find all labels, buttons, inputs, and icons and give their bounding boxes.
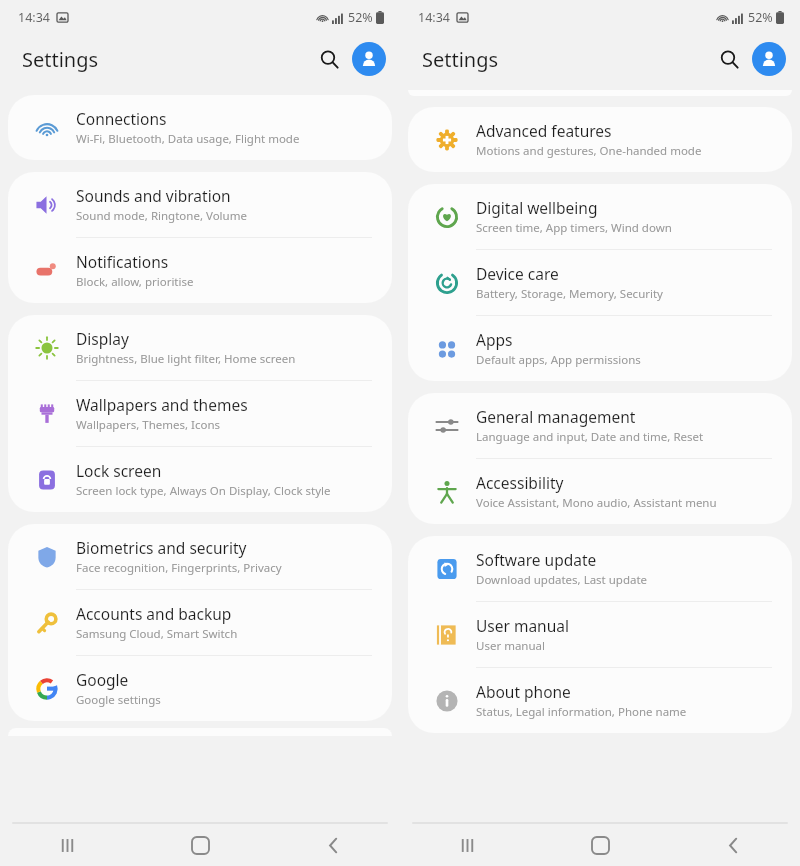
staticText: Samsung Cloud, Smart Switch [76,626,238,642]
button[interactable]: Wallpapers and themes [8,381,392,446]
staticText: Software update [476,549,597,570]
button[interactable]: Back [667,824,800,866]
staticText: Language and input, Date and time, Reset [476,429,704,445]
staticText: Sounds and vibration [76,185,231,206]
staticText: Default apps, App permissions [476,352,641,368]
staticText: Battery, Storage, Memory, Security [476,286,663,302]
staticText: General management [476,406,636,427]
staticText: Connections [76,108,167,129]
button[interactable]: Accessibility [408,459,792,524]
staticText: Advanced features [476,120,612,141]
button[interactable]: Display [8,315,392,380]
staticText: Wallpapers, Themes, Icons [76,417,221,433]
staticText: 14:34 [418,9,450,26]
button[interactable]: Lock screen [8,447,392,512]
staticText: Settings [422,46,499,73]
button[interactable]: About phone [408,668,792,733]
button[interactable]: Connections [8,95,392,160]
button[interactable]: Recents [0,824,134,866]
button[interactable]: Software update [408,536,792,601]
staticText: User manual [476,638,545,654]
staticText: Voice Assistant, Mono audio, Assistant m… [476,495,717,511]
button[interactable]: Home [134,824,267,866]
button[interactable]: Search [312,42,346,76]
button[interactable]: Back [267,824,400,866]
staticText: Block, allow, prioritise [76,274,194,290]
button[interactable]: Apps [408,316,792,381]
staticText: Screen time, App timers, Wind down [476,220,672,236]
button[interactable]: Digital wellbeing [408,184,792,249]
button[interactable]: General management [408,393,792,458]
button[interactable]: Advanced features [408,107,792,172]
button[interactable]: Recents [400,824,534,866]
staticText: Google settings [76,692,161,708]
button[interactable]: Accounts and backup [8,590,392,655]
staticText: Wallpapers and themes [76,394,248,415]
staticText: User manual [476,615,569,636]
staticText: Biometrics and security [76,537,247,558]
button[interactable]: Google [8,656,392,721]
staticText: Screen lock type, Always On Display, Clo… [76,483,331,499]
staticText: Digital wellbeing [476,197,598,218]
staticText: Wi-Fi, Bluetooth, Data usage, Flight mod… [76,131,300,147]
staticText: 52% [748,9,773,26]
staticText: Notifications [76,251,169,272]
staticText: Brightness, Blue light filter, Home scre… [76,351,296,367]
staticText: 52% [348,9,373,26]
staticText: Accounts and backup [76,603,232,624]
button[interactable]: Account [352,42,386,76]
staticText: Face recognition, Fingerprints, Privacy [76,560,282,576]
button[interactable]: Notifications [8,238,392,303]
button[interactable]: Device care [408,250,792,315]
staticText: Display [76,328,129,349]
staticText: Lock screen [76,460,162,481]
staticText: Download updates, Last update [476,572,648,588]
staticText: Google [76,669,129,690]
staticText: Motions and gestures, One-handed mode [476,143,702,159]
button[interactable]: Biometrics and security [8,524,392,589]
button[interactable]: Home [534,824,667,866]
staticText: Accessibility [476,472,564,493]
staticText: Status, Legal information, Phone name [476,704,687,720]
button[interactable]: Sounds and vibration [8,172,392,237]
button[interactable]: Search [712,42,746,76]
staticText: Apps [476,329,513,350]
button[interactable]: User manual [408,602,792,667]
staticText: Sound mode, Ringtone, Volume [76,208,247,224]
button[interactable]: Account [752,42,786,76]
staticText: 14:34 [18,9,50,26]
staticText: About phone [476,681,571,702]
staticText: Device care [476,263,559,284]
staticText: Settings [22,46,99,73]
